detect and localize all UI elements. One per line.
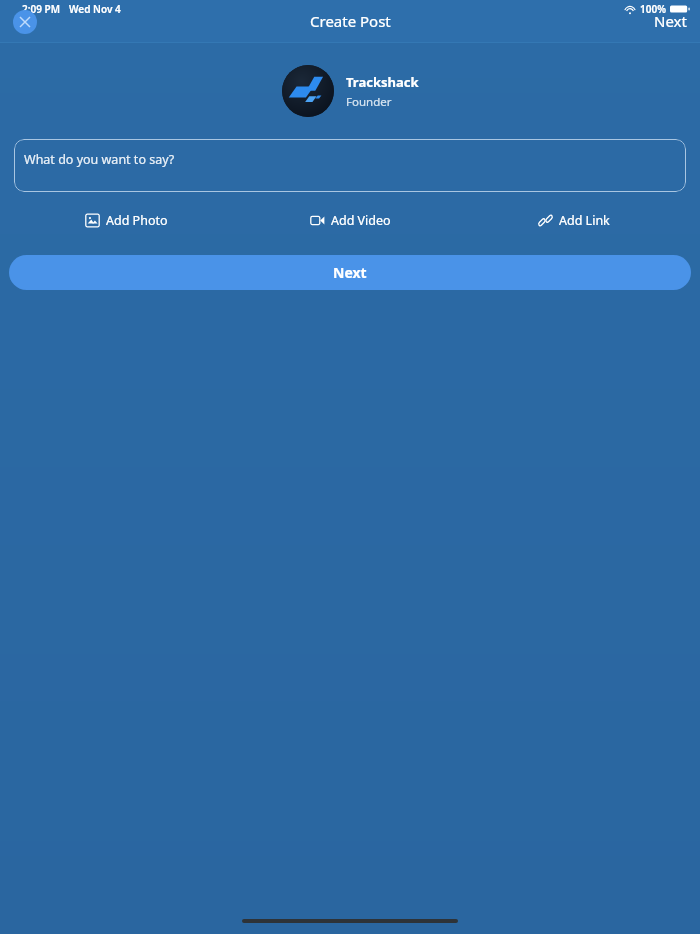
staticText: Add Link [559,212,610,229]
button[interactable]: Add Photo [81,208,172,233]
staticText: Next [654,11,687,31]
button[interactable]: Close [13,10,37,34]
button[interactable]: Add Video [306,208,395,233]
button[interactable]: Next [9,255,691,290]
staticText: 100% [640,2,666,16]
staticText: Add Video [331,212,391,229]
button[interactable]: Next [654,11,687,31]
staticText: Next [333,263,367,282]
staticText: Wed Nov 4 [69,2,121,16]
button[interactable]: What do you want to say? [14,139,686,192]
staticText: 2:09 PM [22,2,60,16]
staticText: Founder [346,94,392,110]
staticText: Create Post [310,11,391,31]
staticText: Trackshack [346,73,419,91]
staticText: Add Photo [106,212,168,229]
staticText: What do you want to say? [24,151,175,168]
button[interactable]: Add Link [534,208,614,233]
button[interactable] [282,65,334,117]
